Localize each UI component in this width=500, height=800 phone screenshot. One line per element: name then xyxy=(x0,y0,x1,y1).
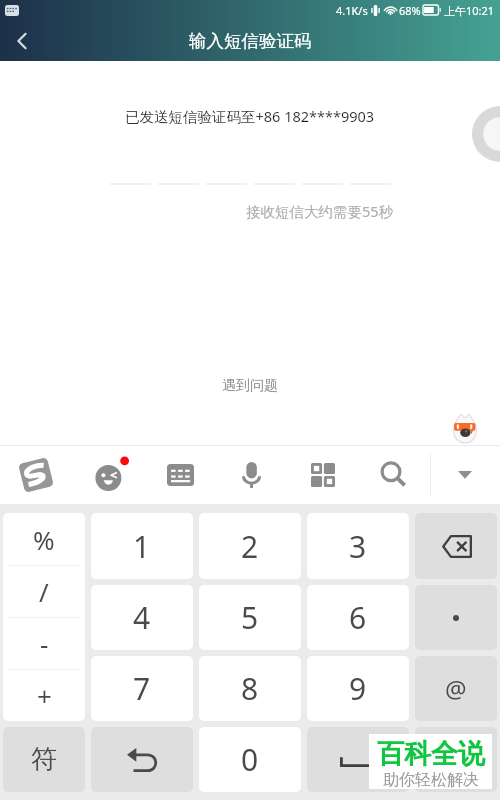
button[interactable]: Keyboard layout xyxy=(144,445,216,504)
button[interactable]: Back xyxy=(2,21,42,61)
button[interactable]: 3 xyxy=(307,513,409,579)
staticText: / xyxy=(39,574,49,609)
staticText: 0 xyxy=(241,739,259,780)
staticText: 4 xyxy=(133,597,151,638)
button[interactable]: 2 xyxy=(199,513,301,579)
button[interactable]: - xyxy=(3,618,85,669)
button[interactable]: space xyxy=(307,727,409,792)
button[interactable]: del xyxy=(415,513,497,579)
button[interactable]: 5 xyxy=(199,585,301,650)
button[interactable]: 7 xyxy=(91,656,193,721)
button[interactable]: Sogou input xyxy=(0,445,72,504)
button[interactable]: 6 xyxy=(307,585,409,650)
staticText: @ xyxy=(445,672,467,705)
staticText: 8 xyxy=(241,668,259,709)
staticText: - xyxy=(40,626,49,661)
button[interactable]: back xyxy=(91,727,193,792)
button[interactable]: + xyxy=(3,670,85,721)
staticText: + xyxy=(37,678,52,713)
button[interactable]: % xyxy=(3,513,85,565)
staticText: 遇到问题 xyxy=(222,377,278,395)
staticText: 4.1K/s xyxy=(336,3,368,18)
staticText: 百科全说 xyxy=(377,737,485,771)
button[interactable]: @ xyxy=(415,656,497,721)
button[interactable]: 遇到问题 xyxy=(222,377,278,395)
button[interactable]: Search xyxy=(358,445,429,504)
button[interactable]: Emoji xyxy=(72,445,144,504)
staticText: 68% xyxy=(399,3,421,18)
button[interactable]: Assistant xyxy=(472,106,500,162)
button[interactable]: 4 xyxy=(91,585,193,650)
staticText: 助你轻松解决 xyxy=(383,770,479,790)
button[interactable]: Input method mascot xyxy=(452,412,478,443)
staticText: 7 xyxy=(133,668,151,709)
button[interactable]: 8 xyxy=(199,656,301,721)
staticText: 符 xyxy=(31,743,57,776)
button[interactable]: . xyxy=(415,585,497,650)
staticText: 3 xyxy=(349,526,367,567)
staticText: 输入短信验证码 xyxy=(189,30,312,52)
staticText: 上午10:21 xyxy=(444,3,495,18)
button[interactable]: / xyxy=(3,566,85,617)
button[interactable]: More tools xyxy=(287,445,358,504)
button[interactable]: 1 xyxy=(91,513,193,579)
staticText: 2 xyxy=(241,526,259,567)
button[interactable]: Hide keyboard xyxy=(429,445,500,504)
button[interactable]: 0 xyxy=(199,727,301,792)
button[interactable]: enter xyxy=(415,727,497,792)
staticText: 9 xyxy=(349,668,367,709)
staticText: % xyxy=(33,522,55,557)
button[interactable]: 9 xyxy=(307,656,409,721)
staticText: 接收短信大约需要55秒 xyxy=(246,201,394,221)
staticText: 6 xyxy=(349,597,367,638)
staticText: 1 xyxy=(133,526,151,567)
staticText: 5 xyxy=(241,597,259,638)
staticText: 已发送短信验证码至+86 182****9903 xyxy=(125,106,375,126)
button[interactable]: 符 xyxy=(3,727,85,792)
button[interactable]: Voice input xyxy=(216,445,287,504)
